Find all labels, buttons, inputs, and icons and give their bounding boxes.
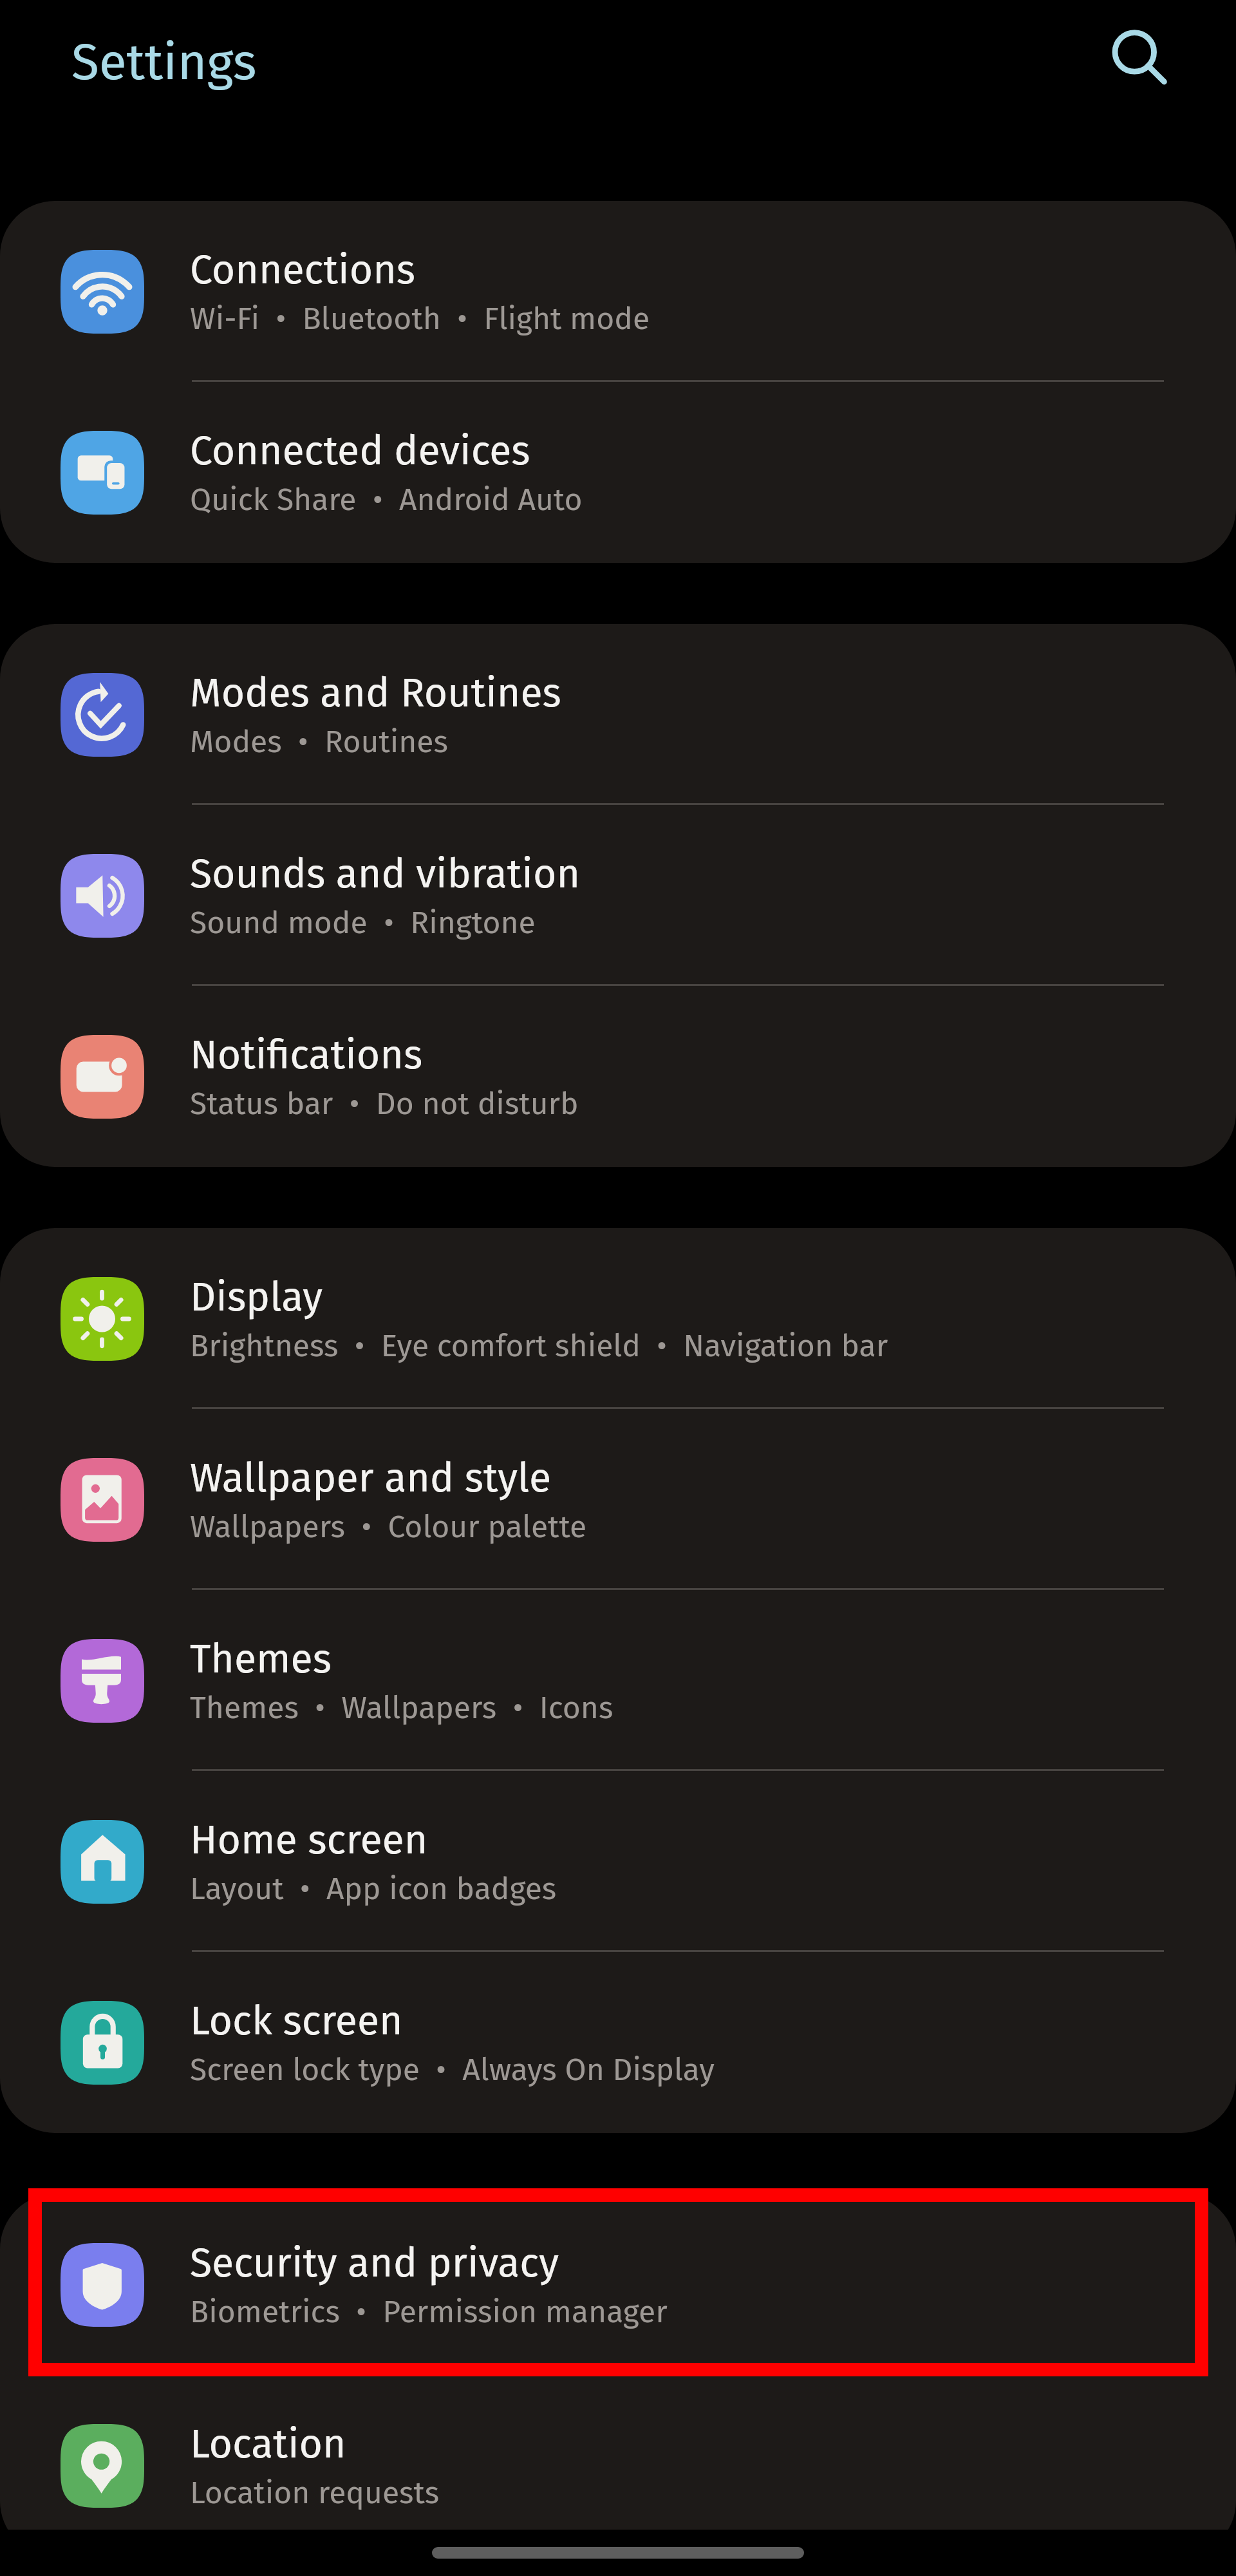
staticText: Sound mode • Ringtone (190, 904, 536, 942)
staticText: Wi-Fi • Bluetooth • Flight mode (190, 300, 650, 337)
staticText: Security and privacy (190, 2239, 559, 2287)
button[interactable]: Search (1094, 13, 1184, 103)
button[interactable]: Wallpaper and style (0, 1409, 1236, 1590)
button[interactable]: Connected devices (0, 382, 1236, 563)
staticText: Themes • Wallpapers • Icons (190, 1689, 613, 1727)
staticText: Wallpapers • Colour palette (190, 1508, 587, 1546)
staticText: Screen lock type • Always On Display (190, 2051, 715, 2088)
staticText: Settings (71, 32, 257, 93)
staticText: Modes and Routines (190, 669, 561, 717)
button[interactable]: Modes and Routines (0, 624, 1236, 805)
staticText: Status bar • Do not disturb (190, 1085, 579, 1122)
staticText: Lock screen (190, 1997, 403, 2045)
staticText: Biometrics • Permission manager (190, 2293, 668, 2331)
staticText: Quick Share • Android Auto (190, 481, 583, 518)
staticText: Location (190, 2420, 346, 2468)
button[interactable]: Themes (0, 1590, 1236, 1771)
button[interactable]: Connections (0, 201, 1236, 382)
staticText: Home screen (190, 1816, 428, 1864)
button[interactable]: Notifications (0, 986, 1236, 1167)
staticText: Layout • App icon badges (190, 1870, 557, 1908)
staticText: Modes • Routines (190, 723, 448, 761)
staticText: Notifications (190, 1031, 423, 1079)
staticText: Connected devices (190, 427, 530, 475)
button[interactable]: Sounds and vibration (0, 805, 1236, 986)
staticText: Themes (190, 1635, 332, 1683)
staticText: Brightness • Eye comfort shield • Naviga… (190, 1327, 888, 1365)
button[interactable]: Display (0, 1228, 1236, 1409)
staticText: Display (190, 1273, 323, 1321)
button[interactable]: Security and privacy (0, 2194, 1236, 2375)
staticText: Location requests (190, 2474, 440, 2512)
button[interactable]: Home screen (0, 1771, 1236, 1952)
staticText: Wallpaper and style (190, 1454, 551, 1502)
staticText: Sounds and vibration (190, 850, 580, 898)
staticText: Connections (190, 246, 415, 294)
button[interactable]: Location (0, 2375, 1236, 2530)
button[interactable]: Lock screen (0, 1952, 1236, 2133)
